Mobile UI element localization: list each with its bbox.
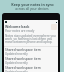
staticText: Notes stay updated everywhere you work, …: [5, 34, 57, 44]
staticText: Shared workspace item: [5, 48, 41, 52]
staticText: Shared workspace item: [5, 66, 41, 70]
staticText: Shared workspace item: [5, 57, 41, 61]
staticText: Updated recently: [5, 61, 28, 65]
staticText: across all your devices: [15, 7, 49, 11]
staticText: Your notes are ready: [5, 29, 35, 33]
staticText: Updated recently: [5, 52, 28, 56]
staticText: Updated recently: [5, 70, 28, 72]
staticText: Welcome back: [5, 24, 30, 29]
staticText: Keep your notes in sync: [11, 2, 54, 7]
